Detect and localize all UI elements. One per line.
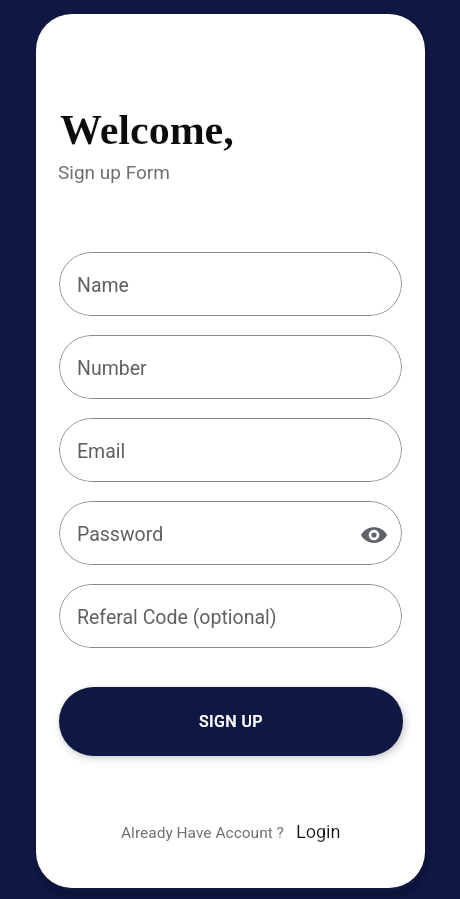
staticText: Email	[77, 440, 126, 463]
staticText: Number	[77, 357, 147, 380]
staticText: Welcome,	[60, 107, 234, 154]
staticText: Login	[296, 821, 341, 842]
staticText: Referal Code (optional)	[77, 606, 277, 629]
staticText: Name	[77, 274, 129, 297]
staticText: Password	[77, 523, 164, 546]
button[interactable]: Email	[59, 418, 402, 482]
button[interactable]: Name	[59, 252, 402, 316]
button[interactable]: Number	[59, 335, 402, 399]
button[interactable]: Show password	[358, 517, 390, 549]
staticText: Already Have Account ?	[121, 824, 284, 842]
button[interactable]: Login	[296, 821, 341, 842]
button[interactable]: SIGN UP	[59, 687, 403, 756]
staticText: Sign up Form	[58, 161, 170, 183]
staticText: SIGN UP	[199, 712, 263, 731]
button[interactable]: Referal Code (optional)	[59, 584, 402, 648]
button[interactable]: Password	[59, 501, 402, 565]
